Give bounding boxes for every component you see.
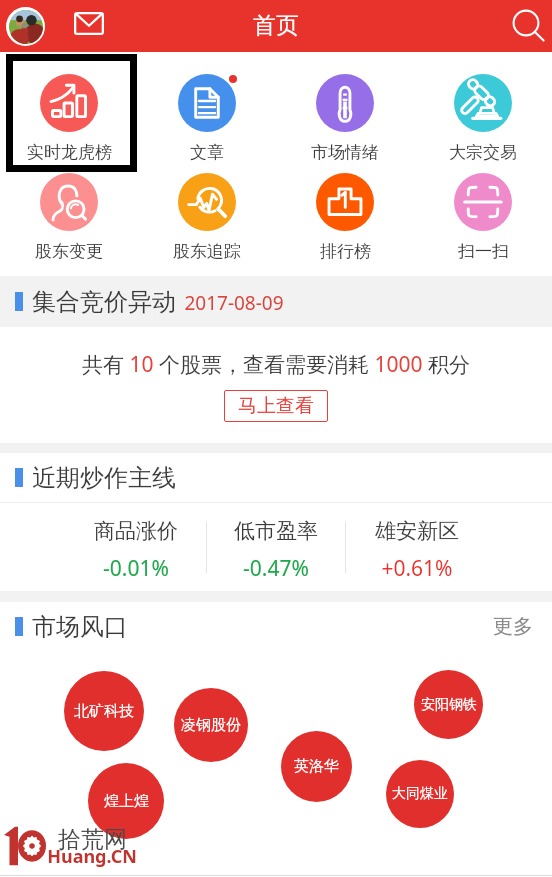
- staticText: -0.01%: [103, 554, 169, 583]
- staticText: +0.61%: [381, 554, 453, 583]
- staticText: 拾荒网: [58, 825, 127, 854]
- button[interactable]: [0, 60, 138, 158]
- button[interactable]: [138, 60, 276, 158]
- button[interactable]: 凌钢股份: [174, 688, 248, 762]
- staticText: 马上查看: [238, 394, 314, 418]
- staticText: 个股票，查看需要消耗: [159, 352, 369, 378]
- staticText: 低市盈率: [234, 518, 318, 544]
- button[interactable]: 大同煤业: [386, 760, 454, 828]
- staticText: 积分: [428, 352, 470, 378]
- button[interactable]: 雄安新区: [346, 508, 487, 592]
- button[interactable]: Search: [504, 1, 552, 47]
- staticText: 扫一扫: [458, 241, 509, 262]
- button[interactable]: 更多: [473, 602, 552, 651]
- button[interactable]: 北矿科技: [64, 671, 144, 751]
- staticText: 煌上煌: [104, 792, 149, 811]
- staticText: 共有: [82, 352, 124, 378]
- button[interactable]: [276, 159, 414, 257]
- button[interactable]: 马上查看: [224, 390, 328, 422]
- button[interactable]: 煌上煌: [88, 763, 164, 839]
- staticText: 凌钢股份: [181, 716, 241, 735]
- staticText: 实时龙虎榜: [27, 142, 112, 163]
- staticText: 更多: [493, 614, 533, 639]
- staticText: 股东变更: [35, 241, 103, 262]
- button[interactable]: [138, 159, 276, 257]
- staticText: 市场风口: [32, 612, 128, 642]
- button[interactable]: 安阳钢铁: [414, 670, 483, 739]
- staticText: 首页: [253, 11, 299, 40]
- staticText: 文章: [190, 142, 224, 163]
- staticText: 大宗交易: [449, 142, 517, 163]
- staticText: 市场情绪: [311, 142, 379, 163]
- button[interactable]: [414, 60, 552, 158]
- staticText: 股东追踪: [173, 241, 241, 262]
- button[interactable]: Messages: [74, 11, 104, 36]
- staticText: 大同煤业: [392, 785, 448, 803]
- button[interactable]: Profile: [6, 7, 45, 46]
- button[interactable]: 英洛华: [281, 731, 352, 802]
- staticText: 近期炒作主线: [32, 463, 176, 493]
- staticText: 1000: [374, 350, 423, 379]
- staticText: 集合竞价异动: [32, 287, 176, 317]
- staticText: 英洛华: [294, 757, 339, 776]
- staticText: 雄安新区: [375, 518, 459, 544]
- staticText: 安阳钢铁: [421, 696, 477, 714]
- button[interactable]: 低市盈率: [206, 508, 346, 592]
- staticText: 10: [129, 350, 154, 379]
- staticText: -0.47%: [243, 554, 309, 583]
- staticText: 2017-08-09: [184, 290, 284, 316]
- staticText: 北矿科技: [74, 702, 134, 721]
- button[interactable]: [0, 159, 138, 257]
- staticText: Huang.CN: [47, 844, 137, 869]
- button[interactable]: [414, 159, 552, 257]
- button[interactable]: [276, 60, 414, 158]
- staticText: 商品涨价: [94, 518, 178, 544]
- button[interactable]: 商品涨价: [65, 508, 206, 592]
- staticText: 排行榜: [320, 241, 371, 262]
